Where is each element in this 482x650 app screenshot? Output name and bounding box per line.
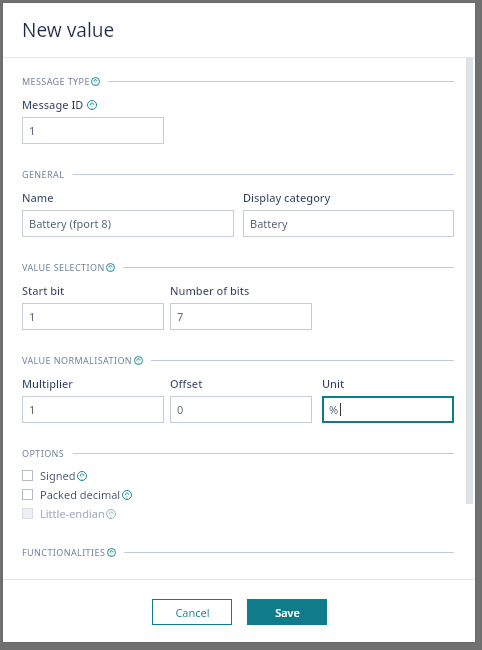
button[interactable]: Signed bbox=[22, 468, 454, 483]
button[interactable]: Little-endian bbox=[22, 506, 454, 521]
staticText: 0 bbox=[177, 402, 184, 417]
staticText: VALUE SELECTION bbox=[22, 261, 105, 273]
button[interactable]: Save bbox=[247, 599, 327, 625]
staticText: Unit bbox=[322, 376, 345, 391]
button[interactable]: 0 bbox=[170, 396, 312, 423]
staticText: Cancel bbox=[175, 605, 210, 620]
staticText: MESSAGE TYPE bbox=[22, 75, 90, 87]
staticText: Little-endian bbox=[40, 506, 105, 521]
staticText: Display category bbox=[243, 190, 331, 205]
staticText: Message ID bbox=[22, 97, 84, 112]
staticText: Save bbox=[275, 605, 300, 620]
staticText: 1 bbox=[29, 309, 36, 324]
staticText: New value bbox=[22, 17, 115, 43]
staticText: 1 bbox=[29, 123, 36, 138]
button[interactable]: 1 bbox=[22, 303, 164, 330]
staticText: Number of bits bbox=[170, 283, 250, 298]
staticText: VALUE NORMALISATION bbox=[22, 354, 133, 366]
button[interactable]: Packed decimal bbox=[22, 487, 454, 502]
staticText: Offset bbox=[170, 376, 203, 391]
button[interactable]: Battery bbox=[243, 210, 454, 237]
staticText: 7 bbox=[177, 309, 184, 324]
staticText: Multiplier bbox=[22, 376, 73, 391]
button[interactable]: Cancel bbox=[152, 599, 232, 625]
staticText: FUNCTIONALITIES bbox=[22, 546, 106, 558]
staticText: Start bit bbox=[22, 283, 65, 298]
staticText: Signed bbox=[40, 468, 76, 483]
staticText: Battery (fport 8) bbox=[29, 216, 111, 231]
staticText: 1 bbox=[29, 402, 36, 417]
button[interactable]: 1 bbox=[22, 117, 164, 144]
button[interactable]: 1 bbox=[22, 396, 164, 423]
button[interactable]: Battery (fport 8) bbox=[22, 210, 234, 237]
staticText: Packed decimal bbox=[40, 487, 121, 502]
staticText: OPTIONS bbox=[22, 447, 65, 459]
staticText: % bbox=[329, 402, 339, 417]
button[interactable]: 7 bbox=[170, 303, 312, 330]
staticText: GENERAL bbox=[22, 168, 65, 180]
button[interactable]: % bbox=[322, 396, 454, 423]
staticText: Name bbox=[22, 190, 54, 205]
staticText: Battery bbox=[250, 216, 288, 231]
